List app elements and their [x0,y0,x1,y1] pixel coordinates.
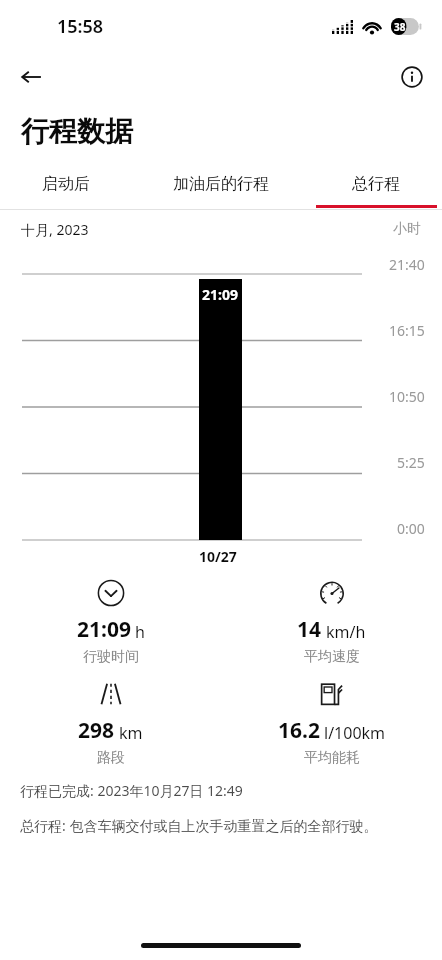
button[interactable]: 16.2 [221,680,442,767]
staticText: km/h [326,621,366,643]
staticText: 21:09 [77,615,131,644]
button[interactable]: 启动后 [0,160,132,208]
staticText: 行程数据 [21,114,133,149]
staticText: 21:40 [389,255,425,274]
button[interactable]: Back [8,54,54,100]
staticText: 路段 [97,749,125,767]
staticText: 行程已完成: 2023年10月27日 12:49 [20,781,243,800]
staticText: 298 [78,716,115,745]
staticText: 0:00 [397,519,425,538]
staticText: 启动后 [42,174,90,194]
staticText: 10/27 [199,547,237,566]
staticText: 总行程 [352,174,400,194]
staticText: 总行程: 包含车辆交付或自上次手动重置之后的全部行驶。 [20,816,378,835]
staticText: 5:25 [397,453,425,472]
staticText: 平均能耗 [304,749,360,767]
staticText: 平均速度 [304,648,360,666]
button[interactable]: 21:09 [0,579,221,666]
button[interactable]: Info [390,55,434,99]
staticText: km [119,722,143,744]
button[interactable]: 298 [0,680,221,767]
staticText: 加油后的行程 [173,174,269,194]
staticText: 15:58 [57,14,104,39]
staticText: 38 [394,20,406,34]
staticText: 10:50 [389,387,425,406]
staticText: 21:09 [202,285,238,304]
staticText: h [135,621,145,643]
button[interactable]: 14 [221,579,442,666]
staticText: 16:15 [389,321,425,340]
staticText: 十月, 2023 [21,220,89,239]
button[interactable]: 总行程 [310,160,442,208]
staticText: 行驶时间 [83,648,139,666]
button[interactable]: 加油后的行程 [132,160,310,208]
staticText: l/100km [324,722,386,744]
staticText: 小时 [393,220,421,238]
staticText: 14 [297,615,322,644]
staticText: 16.2 [278,716,320,745]
